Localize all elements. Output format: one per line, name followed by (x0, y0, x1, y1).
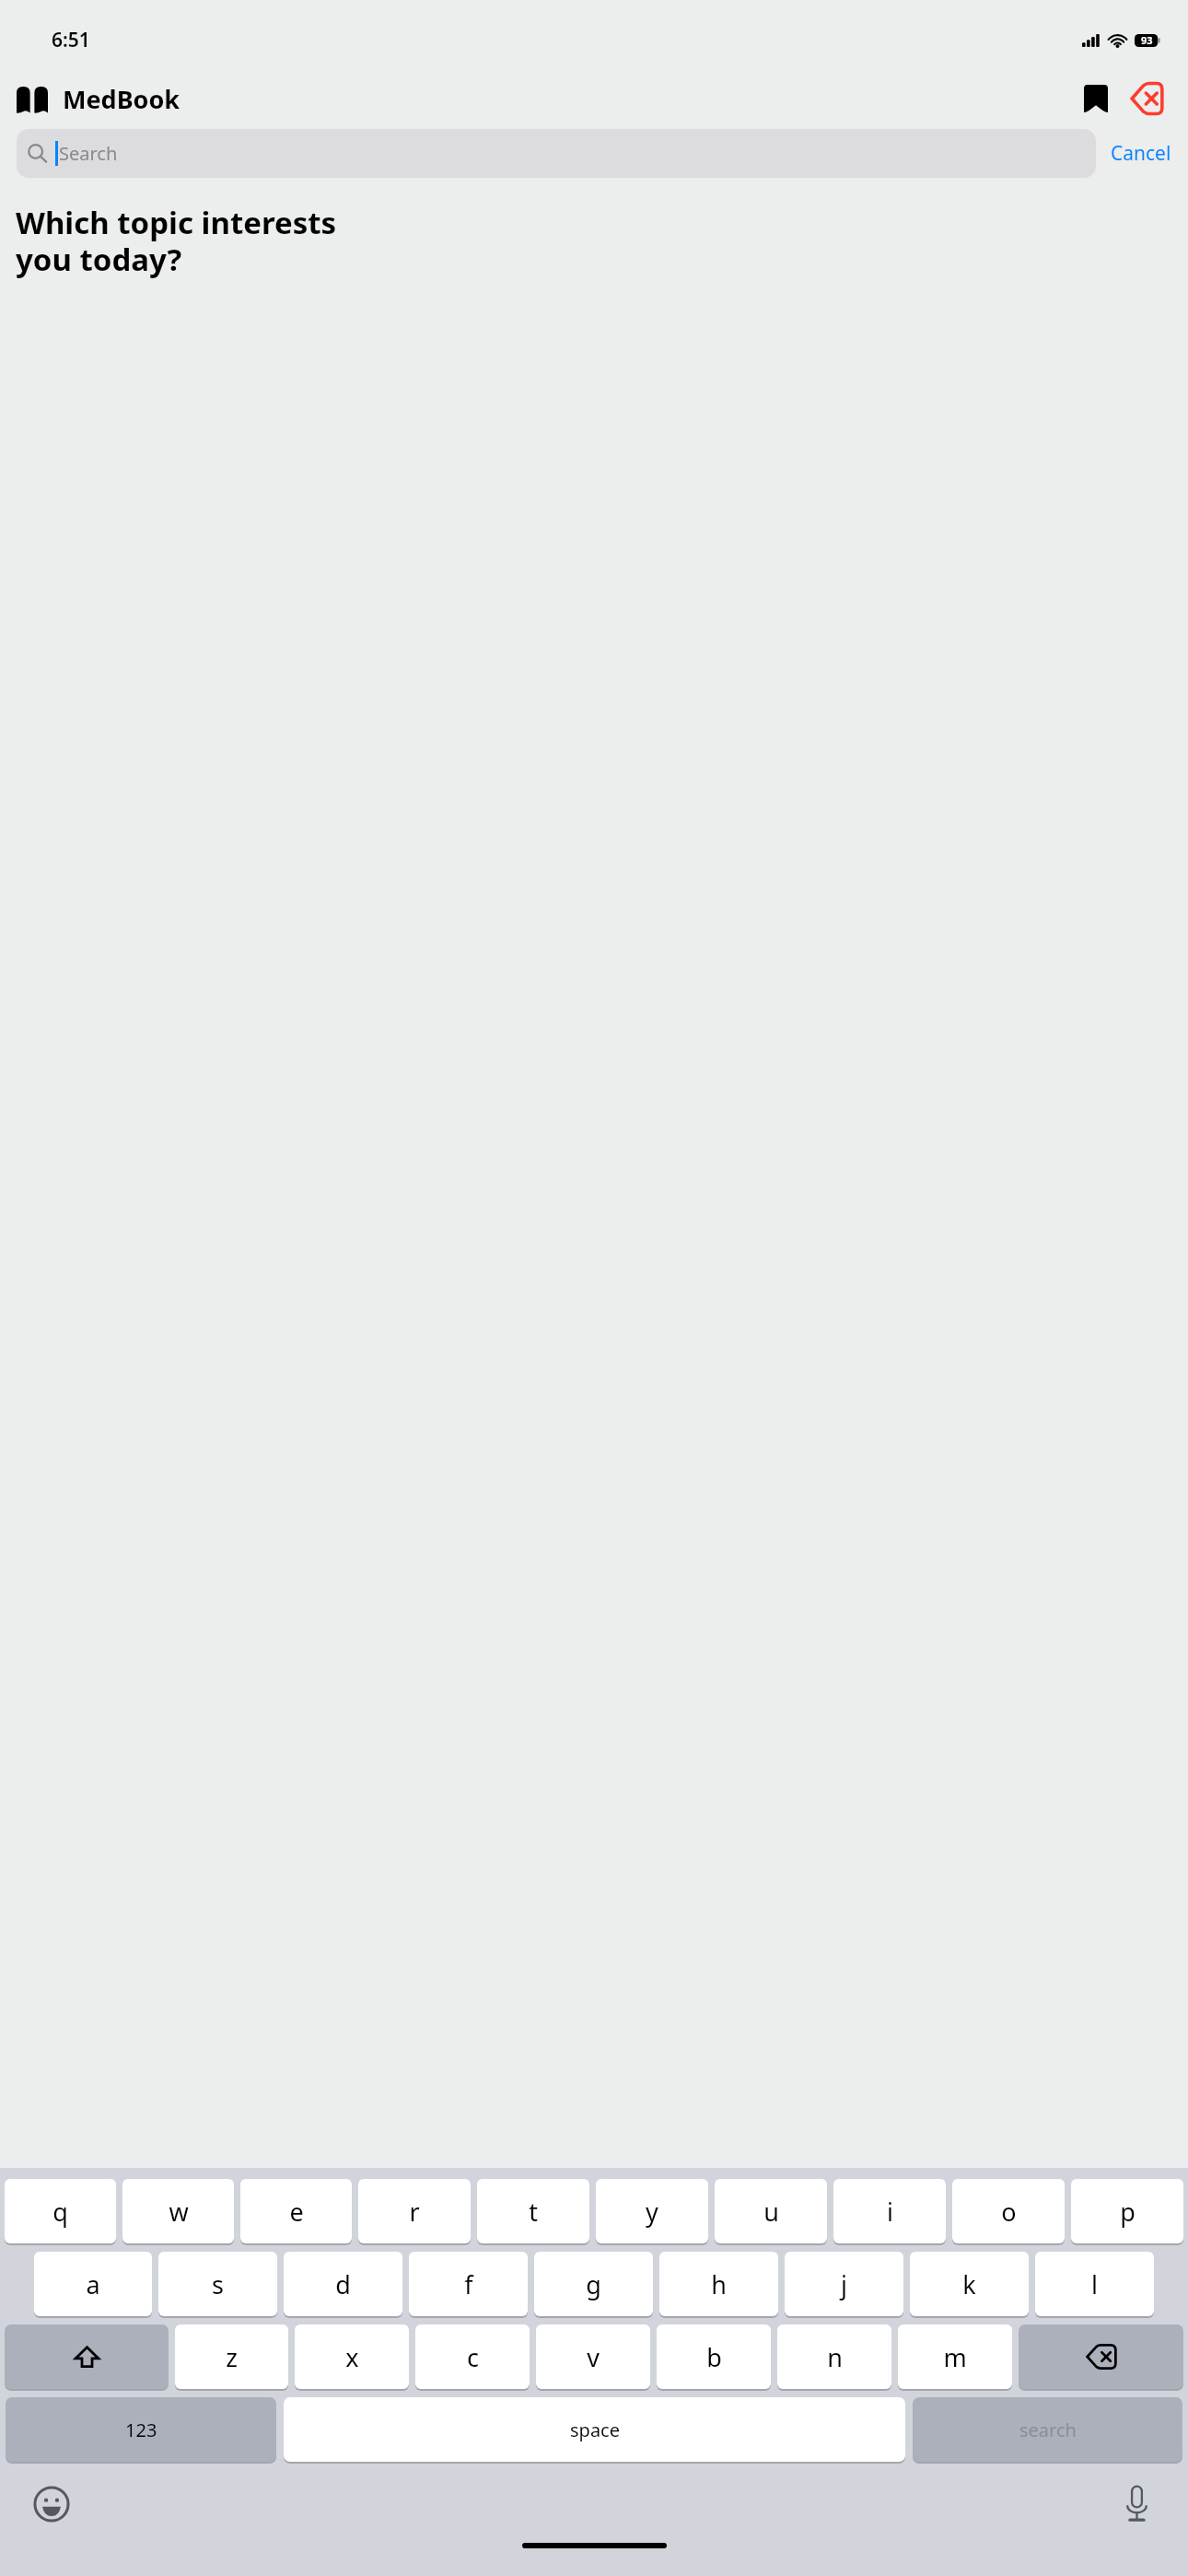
staticText: 6:51 (52, 27, 90, 53)
staticText: z (226, 2340, 238, 2374)
staticText: i (887, 2195, 893, 2229)
button[interactable]: o (952, 2179, 1065, 2243)
button[interactable]: Bookmarks (1074, 76, 1118, 121)
staticText: MedBook (63, 82, 181, 116)
staticText: u (763, 2195, 779, 2229)
button[interactable]: h (659, 2252, 778, 2316)
staticText: k (962, 2267, 976, 2301)
button[interactable]: v (536, 2324, 650, 2389)
staticText: Search (59, 141, 118, 166)
button[interactable]: search (913, 2397, 1182, 2462)
button[interactable]: s (158, 2252, 277, 2316)
button[interactable]: a (34, 2252, 152, 2316)
staticText: a (86, 2267, 100, 2301)
staticText: e (289, 2195, 304, 2229)
button[interactable]: w (122, 2179, 234, 2243)
staticText: x (345, 2340, 359, 2374)
button[interactable]: Cancel (1105, 131, 1177, 176)
button[interactable]: f (409, 2252, 528, 2316)
staticText: b (706, 2340, 722, 2374)
button[interactable]: n (777, 2324, 891, 2389)
button[interactable]: g (534, 2252, 653, 2316)
button[interactable]: b (657, 2324, 771, 2389)
button[interactable]: Shift (5, 2324, 169, 2389)
staticText: h (711, 2267, 727, 2301)
staticText: o (1001, 2195, 1017, 2229)
button[interactable]: u (715, 2179, 827, 2243)
button[interactable]: Clear (1122, 74, 1171, 123)
staticText: m (943, 2340, 967, 2374)
button[interactable]: Dictate (1109, 2476, 1164, 2532)
button[interactable]: k (910, 2252, 1029, 2316)
staticText: s (212, 2267, 224, 2301)
button[interactable]: p (1071, 2179, 1183, 2243)
button[interactable]: t (477, 2179, 589, 2243)
button[interactable]: MedBook (17, 82, 181, 116)
button[interactable]: l (1035, 2252, 1154, 2316)
button[interactable]: j (785, 2252, 903, 2316)
staticText: v (587, 2340, 600, 2374)
button[interactable]: e (240, 2179, 352, 2243)
staticText: f (464, 2267, 473, 2301)
staticText: q (52, 2195, 68, 2229)
staticText: r (409, 2195, 420, 2229)
button[interactable]: c (415, 2324, 530, 2389)
staticText: d (335, 2267, 351, 2301)
staticText: j (841, 2267, 847, 2301)
button[interactable]: z (175, 2324, 288, 2389)
staticText: t (529, 2195, 538, 2229)
staticText: Cancel (1111, 140, 1171, 167)
staticText: l (1091, 2267, 1098, 2301)
staticText: p (1120, 2195, 1136, 2229)
staticText: n (827, 2340, 843, 2374)
button[interactable]: m (898, 2324, 1012, 2389)
staticText: 93 (1141, 33, 1153, 47)
staticText: w (169, 2195, 189, 2229)
staticText: search (1019, 2418, 1077, 2442)
button[interactable]: r (358, 2179, 471, 2243)
staticText: Which topic interests you today? (16, 202, 337, 280)
button[interactable]: Backspace (1019, 2324, 1183, 2389)
button[interactable]: y (596, 2179, 708, 2243)
button[interactable]: x (295, 2324, 409, 2389)
button[interactable]: space (284, 2397, 905, 2462)
button[interactable]: d (284, 2252, 402, 2316)
button[interactable]: Emoji (24, 2476, 79, 2532)
staticText: y (646, 2195, 658, 2229)
staticText: g (586, 2267, 601, 2301)
button[interactable]: i (833, 2179, 946, 2243)
button[interactable]: 123 (6, 2397, 276, 2462)
button[interactable]: q (5, 2179, 116, 2243)
staticText: 123 (125, 2418, 157, 2442)
button[interactable]: Search (17, 129, 1096, 178)
staticText: c (467, 2340, 479, 2374)
staticText: space (570, 2418, 620, 2442)
